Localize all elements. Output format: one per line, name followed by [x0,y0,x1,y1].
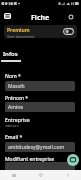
staticText: Modifiant entreprise [5,156,55,163]
button[interactable]: Applications récentes [0,170,27,180]
staticText: Email * [5,134,23,141]
button[interactable]: Activer Premium [61,27,75,36]
staticText: Gérer abonnement [7,35,34,38]
staticText: Massih [8,83,25,90]
staticText: Prénom * [5,95,28,102]
button[interactable]: Premium [4,25,77,38]
staticText: ambitudesy@ymail.com [8,144,65,151]
button[interactable]: Massih [5,81,75,91]
staticText: Fiche [31,13,50,23]
button[interactable]: Accueil [27,170,54,180]
button[interactable]: Retour [54,170,81,180]
staticText: valeurs [5,123,19,128]
button[interactable] [5,162,75,172]
button[interactable]: Enregistrer [66,12,76,22]
button[interactable]: Carte de visite [1,10,14,22]
staticText: Premium [7,27,30,34]
button[interactable]: valeurs [5,123,75,130]
button[interactable]: Enregistrer la fiche [67,154,79,166]
button[interactable]: Amine [5,102,75,112]
staticText: Nom * [5,73,21,80]
button[interactable]: ambitudesy@ymail.com [5,142,75,152]
staticText: Entreprise [5,117,30,124]
staticText: Amine [8,104,24,111]
staticText: Infos [3,50,18,58]
button[interactable]: Infos [0,45,24,64]
